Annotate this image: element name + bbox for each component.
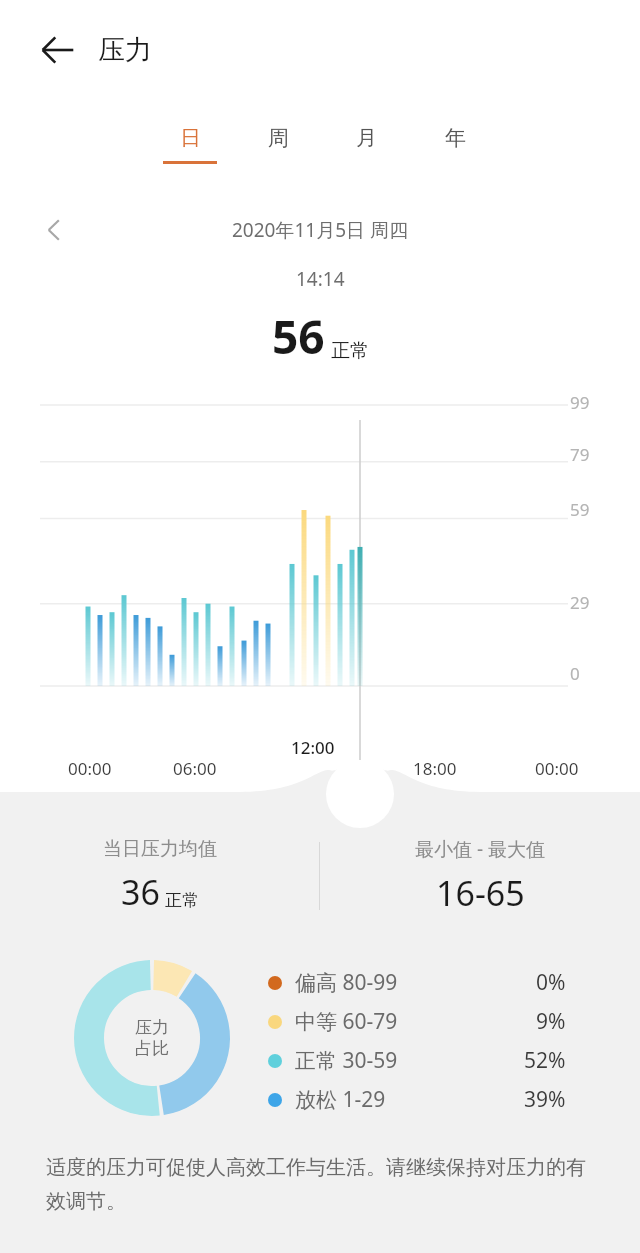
- button[interactable]: 日: [152, 125, 228, 183]
- staticText: 中等 60-79: [295, 1007, 398, 1036]
- staticText: 52%: [524, 1046, 566, 1075]
- staticText: 99: [570, 391, 590, 414]
- staticText: 79: [570, 443, 590, 466]
- staticText: 59: [570, 498, 590, 521]
- staticText: 18:00: [413, 757, 457, 780]
- staticText: 月: [356, 125, 377, 151]
- staticText: 正常: [331, 339, 369, 363]
- button[interactable]: 周: [240, 125, 316, 183]
- staticText: 正常 30-59: [295, 1046, 398, 1075]
- staticText: 年: [445, 125, 466, 151]
- staticText: 2020年11月5日 周四: [232, 217, 409, 243]
- staticText: 偏高 80-99: [295, 968, 398, 997]
- staticText: 16-65: [436, 870, 525, 916]
- button[interactable]: Previous day: [32, 208, 76, 252]
- staticText: 29: [570, 591, 590, 614]
- button[interactable]: 年: [417, 125, 493, 183]
- staticText: 压力: [135, 1017, 169, 1038]
- staticText: 06:00: [173, 757, 217, 780]
- button[interactable]: 偏高 80-99: [268, 963, 588, 1002]
- staticText: 0%: [536, 968, 566, 997]
- staticText: 14:14: [296, 266, 345, 292]
- staticText: 正常: [165, 890, 199, 911]
- staticText: 周: [268, 125, 289, 151]
- staticText: 压力: [98, 33, 152, 67]
- staticText: 00:00: [535, 757, 579, 780]
- staticText: 0: [570, 662, 580, 685]
- staticText: 00:00: [68, 757, 112, 780]
- staticText: 适度的压力可促使人高效工作与生活。请继续保持对压力的有效调节。: [46, 1155, 594, 1214]
- button[interactable]: 中等 60-79: [268, 1002, 588, 1041]
- staticText: 56: [272, 305, 325, 368]
- staticText: 最小值 - 最大值: [415, 836, 545, 862]
- staticText: 36: [121, 869, 160, 915]
- button[interactable]: 月: [328, 125, 404, 183]
- staticText: 占比: [135, 1038, 169, 1059]
- staticText: 放松 1-29: [295, 1085, 386, 1114]
- staticText: 12:00: [291, 736, 335, 759]
- staticText: 9%: [536, 1007, 566, 1036]
- button[interactable]: Back: [34, 26, 82, 74]
- button[interactable]: 正常 30-59: [268, 1041, 588, 1080]
- button[interactable]: 放松 1-29: [268, 1080, 588, 1119]
- staticText: 39%: [524, 1085, 566, 1114]
- staticText: 日: [180, 125, 201, 151]
- staticText: 当日压力均值: [103, 837, 217, 861]
- button[interactable]: 当日压力均值: [0, 837, 319, 915]
- button[interactable]: 最小值 - 最大值: [320, 836, 640, 916]
